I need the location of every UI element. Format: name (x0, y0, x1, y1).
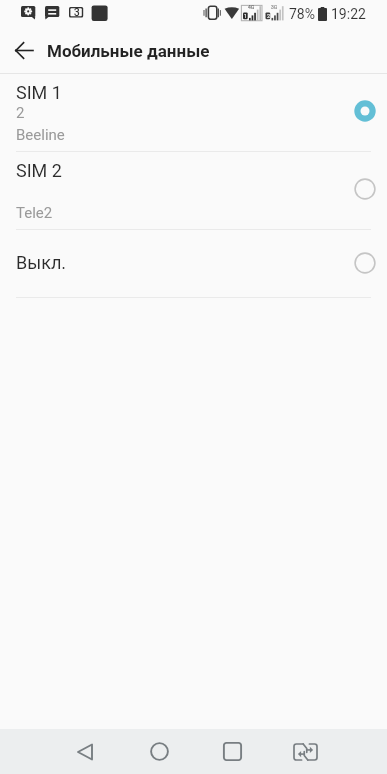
staticText: 3 (74, 7, 80, 18)
staticText: 3G (271, 4, 278, 10)
staticText: 2 (16, 104, 25, 122)
staticText: Мобильные данные (47, 41, 210, 61)
staticText: SIM 2 (16, 160, 62, 181)
staticText: 78% (289, 6, 315, 22)
button[interactable]: Back (61, 729, 109, 774)
staticText: 2 (267, 13, 271, 19)
button[interactable]: SIM 1 (0, 74, 387, 151)
staticText: 19:22 (331, 6, 366, 22)
staticText: 1 (244, 13, 248, 19)
staticText: Beeline (16, 126, 65, 144)
button[interactable]: Home (135, 729, 183, 774)
staticText: Tele2 (16, 204, 53, 222)
button[interactable]: Выкл. (0, 230, 387, 297)
button[interactable]: SIM 2 (0, 152, 387, 229)
button[interactable]: Multi window (281, 729, 329, 774)
button[interactable]: Recents (208, 729, 256, 774)
button[interactable]: Back (0, 28, 48, 73)
staticText: 4G (248, 4, 255, 10)
staticText: Выкл. (16, 252, 67, 273)
staticText: SIM 1 (16, 82, 62, 103)
